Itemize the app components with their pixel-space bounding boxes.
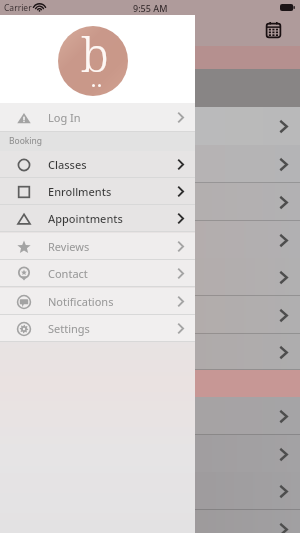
button[interactable]: Reviews — [0, 233, 195, 260]
button[interactable]: Classes — [0, 151, 195, 178]
staticText: b — [81, 26, 109, 86]
button[interactable] — [0, 183, 300, 221]
staticText: Carrier — [4, 2, 32, 14]
staticText: Classes — [48, 157, 87, 172]
staticText: Enrollments — [48, 184, 112, 199]
staticText: Notifications — [48, 294, 114, 309]
button[interactable]: Enrollments — [0, 178, 195, 205]
button[interactable] — [0, 258, 300, 296]
button[interactable]: Log In — [0, 103, 195, 132]
button[interactable] — [0, 296, 300, 334]
staticText: Log In — [48, 110, 81, 125]
button[interactable] — [0, 221, 300, 259]
button[interactable] — [0, 145, 300, 183]
button[interactable] — [0, 472, 300, 510]
staticText: Contact — [48, 266, 88, 281]
button[interactable] — [0, 510, 300, 533]
button[interactable] — [0, 334, 300, 370]
staticText: Booking — [9, 135, 43, 147]
button[interactable] — [0, 107, 300, 146]
button[interactable]: Calendar — [266, 22, 281, 38]
button[interactable] — [0, 397, 300, 435]
button[interactable]: Contact — [0, 260, 195, 287]
button[interactable]: Appointments — [0, 205, 195, 232]
staticText: Appointments — [48, 211, 123, 226]
button[interactable]: Settings — [0, 315, 195, 342]
button[interactable] — [0, 435, 300, 473]
button[interactable]: Notifications — [0, 288, 195, 315]
staticText: Reviews — [48, 239, 90, 254]
staticText: 9:55 AM — [133, 2, 168, 14]
staticText: Settings — [48, 321, 90, 336]
